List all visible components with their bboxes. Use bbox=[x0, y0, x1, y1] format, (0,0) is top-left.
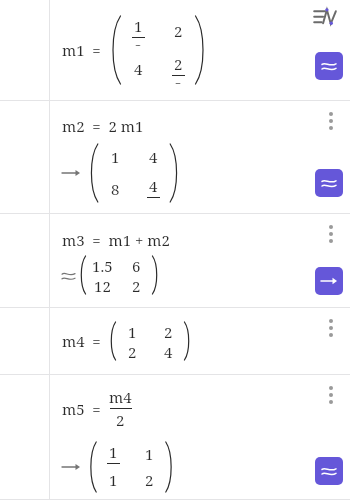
staticText: 4 bbox=[149, 147, 158, 167]
button[interactable]: Show approximate value bbox=[315, 169, 343, 197]
staticText: m2 = 2 m1 bbox=[62, 116, 144, 136]
staticText: m4 bbox=[109, 387, 132, 407]
button[interactable]: More options bbox=[317, 381, 345, 409]
button[interactable]: More options bbox=[317, 220, 345, 248]
staticText: 1.5 bbox=[92, 256, 113, 274]
button[interactable]: Show exact value bbox=[315, 267, 343, 295]
button[interactable]: Show approximate value bbox=[315, 457, 343, 485]
staticText: 2 bbox=[174, 54, 183, 74]
staticText: 1 bbox=[111, 147, 120, 167]
button[interactable]: m1 = bbox=[50, 0, 350, 100]
staticText: 8 bbox=[111, 179, 120, 199]
staticText: m3 = m1 + m2 bbox=[62, 230, 170, 250]
button[interactable]: Show approximate value bbox=[315, 52, 343, 80]
staticText: 2 bbox=[134, 39, 143, 46]
staticText: 2 bbox=[128, 342, 137, 360]
staticText: 1 bbox=[128, 322, 137, 340]
staticText: 2 bbox=[164, 322, 173, 340]
staticText: m1 = bbox=[62, 40, 101, 60]
button[interactable]: Switch to graphics view bbox=[304, 0, 346, 36]
staticText: 4 bbox=[149, 176, 158, 196]
button[interactable]: More options bbox=[317, 107, 345, 135]
staticText: 2 bbox=[116, 410, 125, 430]
staticText: 1 bbox=[134, 16, 143, 36]
staticText: 6 bbox=[132, 256, 141, 274]
staticText: 4 bbox=[164, 342, 173, 360]
button[interactable]: m3 = m1 + m2 bbox=[50, 214, 350, 307]
staticText: 12 bbox=[94, 276, 111, 294]
staticText: 3 bbox=[174, 77, 183, 84]
staticText: 1 bbox=[145, 444, 154, 464]
staticText: 4 bbox=[134, 59, 143, 79]
staticText: 1 bbox=[109, 470, 118, 490]
staticText: 1 bbox=[109, 442, 118, 462]
staticText: m5 = bbox=[62, 399, 101, 419]
button[interactable]: More options bbox=[317, 314, 345, 342]
staticText: 2 bbox=[145, 470, 154, 490]
staticText: 2 bbox=[132, 276, 141, 294]
staticText: m4 = bbox=[62, 331, 101, 351]
button[interactable]: m5 = bbox=[50, 375, 350, 499]
staticText: 2 bbox=[174, 21, 183, 41]
button[interactable]: m2 = 2 m1 bbox=[50, 101, 350, 213]
button[interactable]: m4 = bbox=[50, 308, 350, 374]
